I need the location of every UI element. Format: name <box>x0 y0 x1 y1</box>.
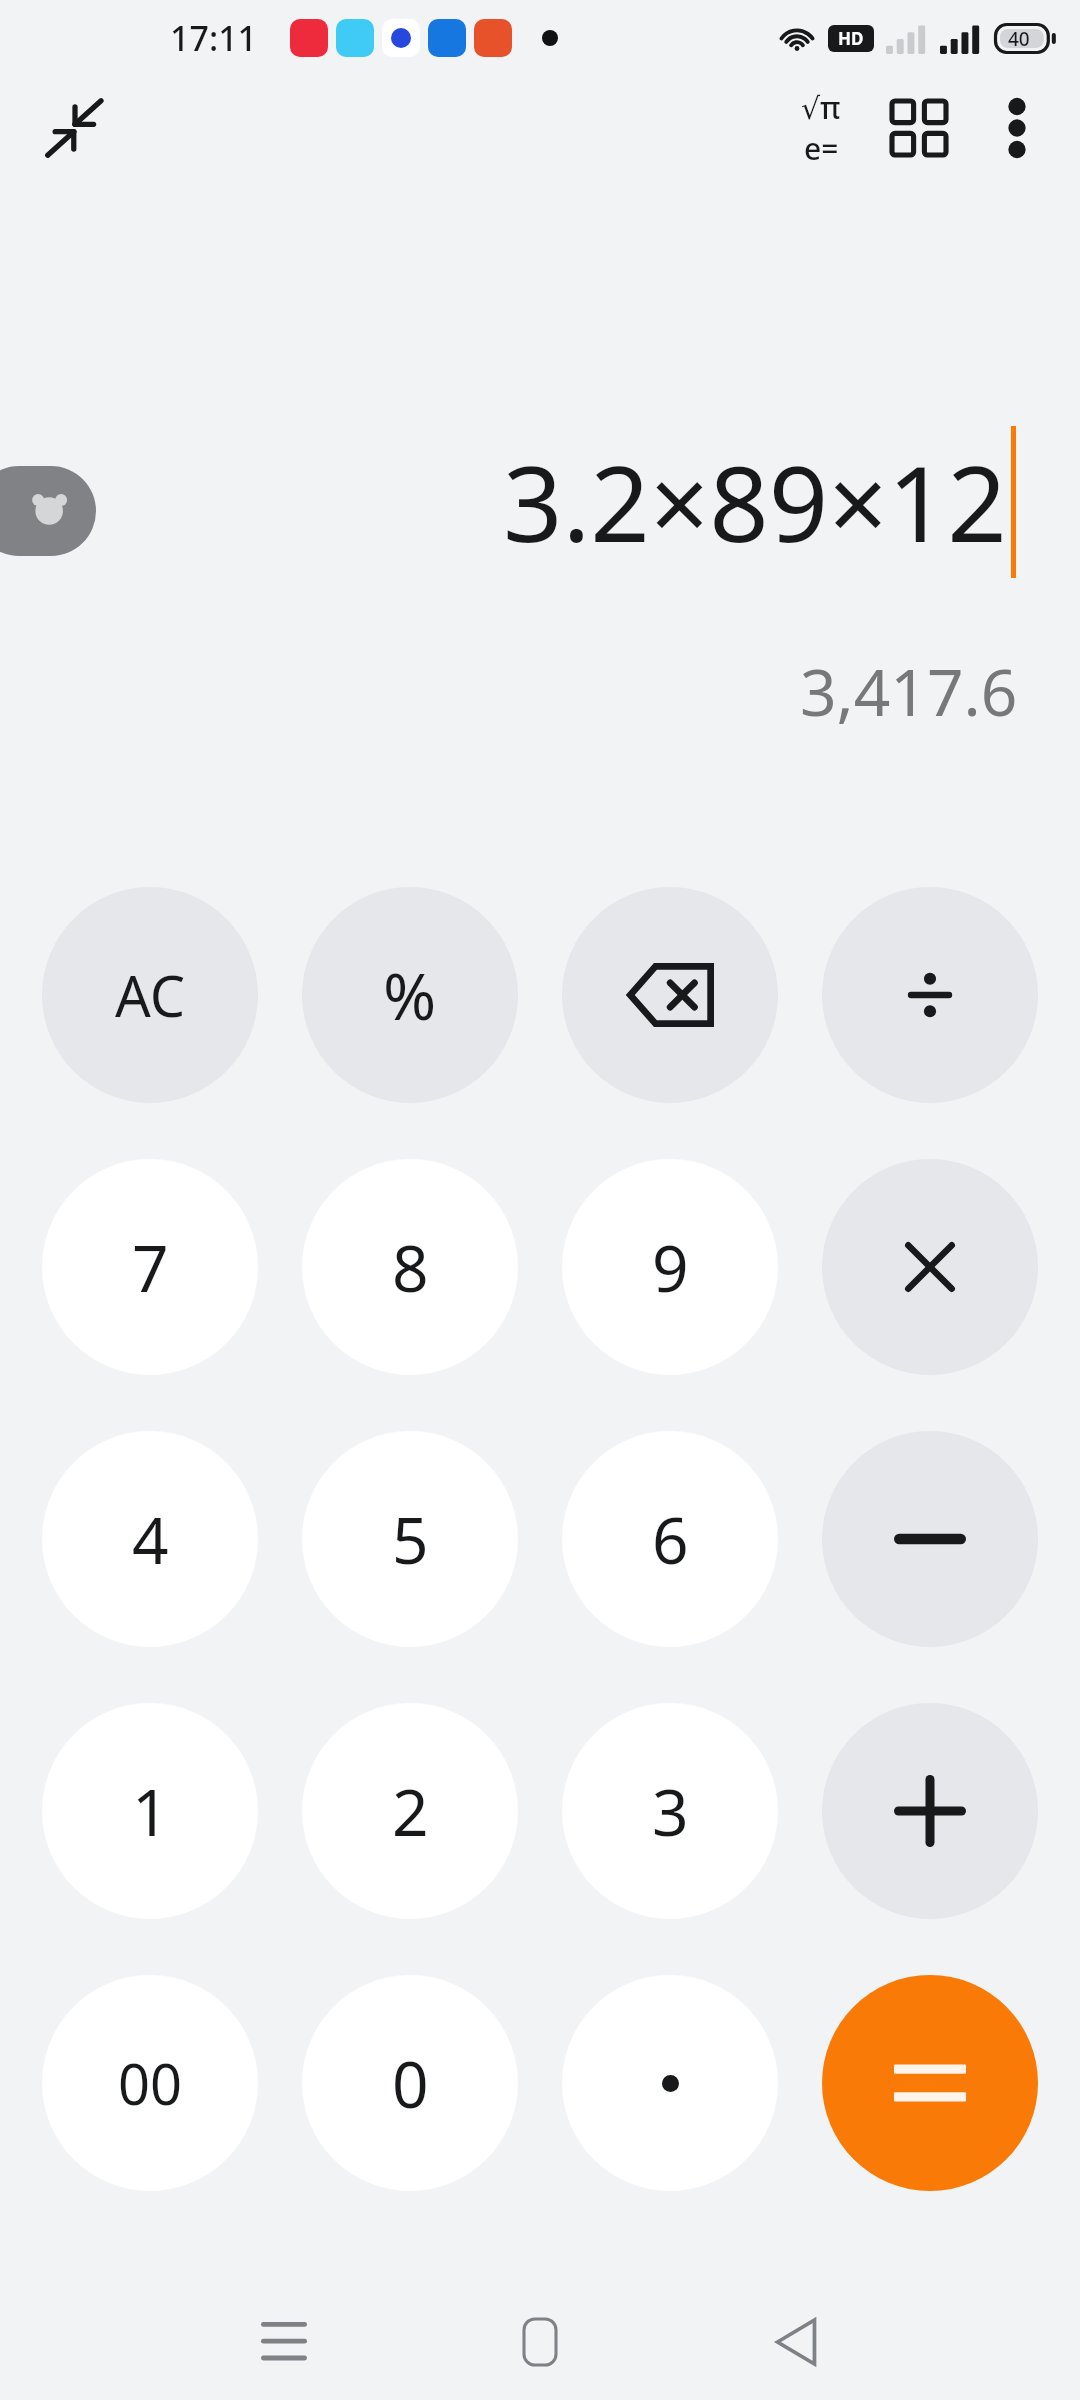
button[interactable]: Delete <box>562 887 778 1103</box>
button[interactable]: Unit converter <box>870 79 968 177</box>
button[interactable]: Multiply <box>822 1159 1038 1375</box>
staticText: 4 <box>132 1496 169 1583</box>
staticText: 8 <box>392 1224 429 1311</box>
staticText: 9 <box>652 1224 689 1311</box>
button[interactable]: Scientific mode <box>772 79 870 177</box>
button[interactable]: Divide <box>822 887 1038 1103</box>
button[interactable]: . <box>562 1975 778 2191</box>
staticText: 3,417.6 <box>800 648 1018 735</box>
button[interactable]: 4 <box>42 1431 258 1647</box>
button[interactable]: 9 <box>562 1159 778 1375</box>
staticText: 5 <box>392 1496 429 1583</box>
button[interactable]: 0 <box>302 1975 518 2191</box>
button[interactable]: Home <box>465 2286 615 2398</box>
staticText: 7 <box>132 1224 169 1311</box>
staticText: 6 <box>652 1496 689 1583</box>
staticText: % <box>383 952 437 1039</box>
button[interactable]: 3 <box>562 1703 778 1919</box>
staticText: 0 <box>392 2040 429 2127</box>
staticText: √π <box>801 87 841 128</box>
button[interactable]: 1 <box>42 1703 258 1919</box>
staticText: HD <box>838 27 864 50</box>
staticText: 17:11 <box>170 15 258 61</box>
staticText: 00 <box>118 2045 183 2121</box>
button[interactable]: Back <box>721 2286 871 2398</box>
button[interactable]: % <box>302 887 518 1103</box>
staticText: 3.2×89×12 <box>503 431 1007 573</box>
button[interactable]: 6 <box>562 1431 778 1647</box>
staticText: 3 <box>652 1768 689 1855</box>
button[interactable]: More options <box>968 79 1066 177</box>
button[interactable]: 2 <box>302 1703 518 1919</box>
button[interactable]: 5 <box>302 1431 518 1647</box>
staticText: 2 <box>392 1768 429 1855</box>
button[interactable]: 8 <box>302 1159 518 1375</box>
button[interactable]: Minus <box>822 1431 1038 1647</box>
button[interactable]: Assistant <box>0 466 96 556</box>
staticText: e= <box>804 128 839 169</box>
button[interactable]: 7 <box>42 1159 258 1375</box>
button[interactable]: Equals <box>822 1975 1038 2191</box>
staticText: 1 <box>132 1768 169 1855</box>
button[interactable]: 00 <box>42 1975 258 2191</box>
staticText: 40 <box>1008 26 1030 52</box>
button[interactable]: Plus <box>822 1703 1038 1919</box>
button[interactable]: Recents <box>209 2286 359 2398</box>
button[interactable]: Collapse <box>26 79 124 177</box>
staticText: AC <box>115 957 186 1033</box>
button[interactable]: AC <box>42 887 258 1103</box>
